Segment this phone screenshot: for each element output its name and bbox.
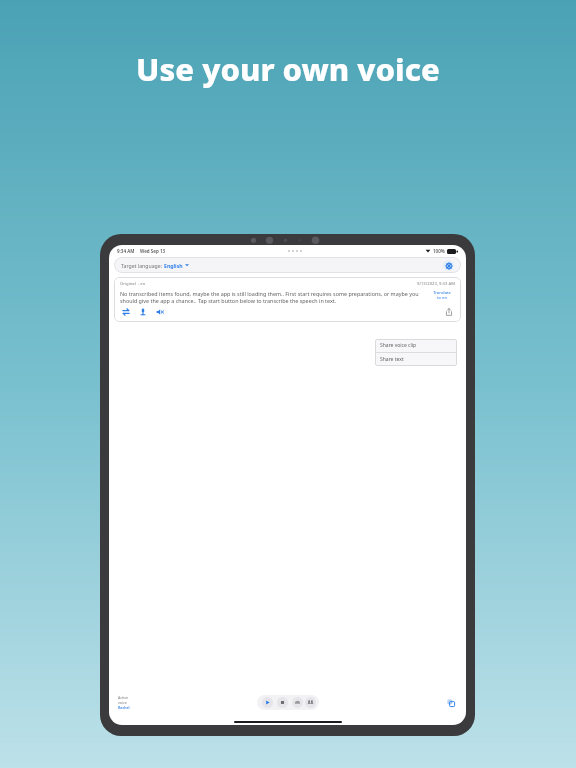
staticText: 100%: [433, 248, 445, 254]
staticText: Active: [118, 695, 129, 700]
button[interactable]: Share voice clip: [375, 339, 457, 352]
button[interactable]: Copy: [445, 697, 457, 709]
staticText: Share text: [380, 356, 404, 363]
staticText: Target language:: [121, 262, 164, 269]
staticText: Wed Sep 13: [140, 248, 166, 254]
staticText: voice: [118, 700, 127, 705]
staticText: 9:34 AM: [117, 248, 135, 254]
button[interactable]: Microphone: [137, 306, 149, 318]
staticText: Translate: [433, 290, 451, 295]
button[interactable]: Swap: [120, 306, 132, 318]
button[interactable]: Share text: [375, 353, 457, 366]
button[interactable]: Share: [443, 306, 455, 318]
button[interactable]: Mute: [154, 306, 166, 318]
button[interactable]: Play: [262, 697, 273, 708]
staticText: Share voice clip: [380, 342, 417, 349]
staticText: Original - en: [120, 281, 146, 287]
staticText: Rachel: [118, 705, 130, 710]
button[interactable]: Target language:: [114, 257, 461, 273]
staticText: Use your own voice: [0, 48, 576, 90]
button[interactable]: Stop: [277, 697, 288, 708]
button[interactable]: Speakers: [305, 697, 316, 708]
button[interactable]: Cloud: [292, 697, 303, 708]
button[interactable]: Original - en: [114, 277, 461, 322]
staticText: No transcribed items found, maybe the ap…: [120, 290, 426, 304]
staticText: 9/13/2023, 9:33 AM: [417, 281, 455, 287]
button[interactable]: Translate: [429, 290, 455, 300]
button[interactable]: Settings: [443, 260, 454, 271]
staticText: English: [164, 262, 183, 269]
staticText: to en: [437, 295, 447, 300]
